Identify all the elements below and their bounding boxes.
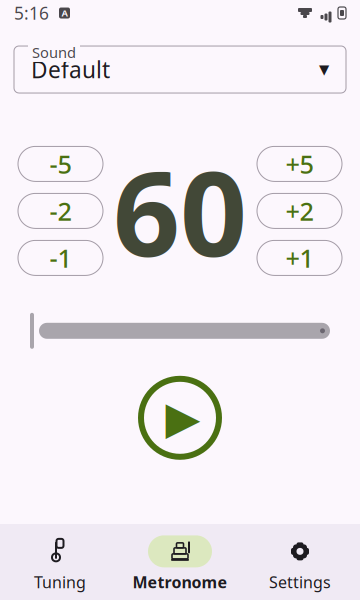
staticText: ▼ [319,62,329,77]
staticText: -2 [49,194,71,228]
staticText: Default [31,54,110,84]
button[interactable]: Play [141,379,219,457]
button[interactable]: -2 [18,193,103,228]
staticText: Metronome [132,571,227,593]
staticText: Settings [269,571,331,593]
staticText: Sound [32,42,76,62]
button[interactable]: Settings [240,524,360,600]
staticText: +5 [285,147,313,181]
staticText: -1 [49,241,71,275]
button[interactable] [30,311,330,351]
button[interactable]: Default [14,46,346,93]
button[interactable]: Tuning [0,524,120,600]
staticText: +1 [285,241,313,275]
button[interactable]: -5 [18,146,103,181]
staticText: -5 [49,147,71,181]
button[interactable]: +1 [257,240,342,275]
staticText: Tuning [34,571,86,593]
staticText: +2 [285,194,313,228]
button[interactable]: +2 [257,193,342,228]
button[interactable]: +5 [257,146,342,181]
staticText: 5:16 [14,1,49,24]
staticText: 60 [113,133,247,289]
staticText: ▶ [165,392,200,444]
button[interactable]: Metronome [120,524,240,600]
staticText: A [61,7,67,19]
button[interactable]: -1 [18,240,103,275]
